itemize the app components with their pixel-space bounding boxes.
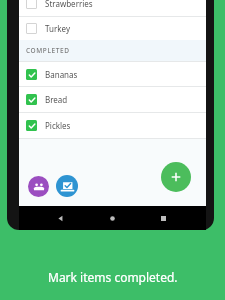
staticText: Strawberries [45,0,93,9]
button[interactable]: Strawberries [19,0,206,16]
button[interactable]: Home [102,206,122,230]
staticText: Bananas [45,69,78,80]
button[interactable]: Share list [28,176,49,197]
staticText: Mark items completed. [48,269,178,285]
button[interactable]: Pickles [19,113,206,138]
button[interactable]: Back [50,206,70,230]
staticText: Turkey [45,23,70,34]
button[interactable]: Recent apps [153,206,173,230]
button[interactable]: Bread [19,87,206,112]
button[interactable]: Turkey [19,17,206,40]
staticText: Pickles [45,120,71,131]
staticText: COMPLETED [26,46,70,55]
button[interactable]: Add item [161,162,191,192]
button[interactable]: Check off items [56,175,78,197]
button[interactable]: Bananas [19,62,206,86]
staticText: Bread [45,94,68,105]
